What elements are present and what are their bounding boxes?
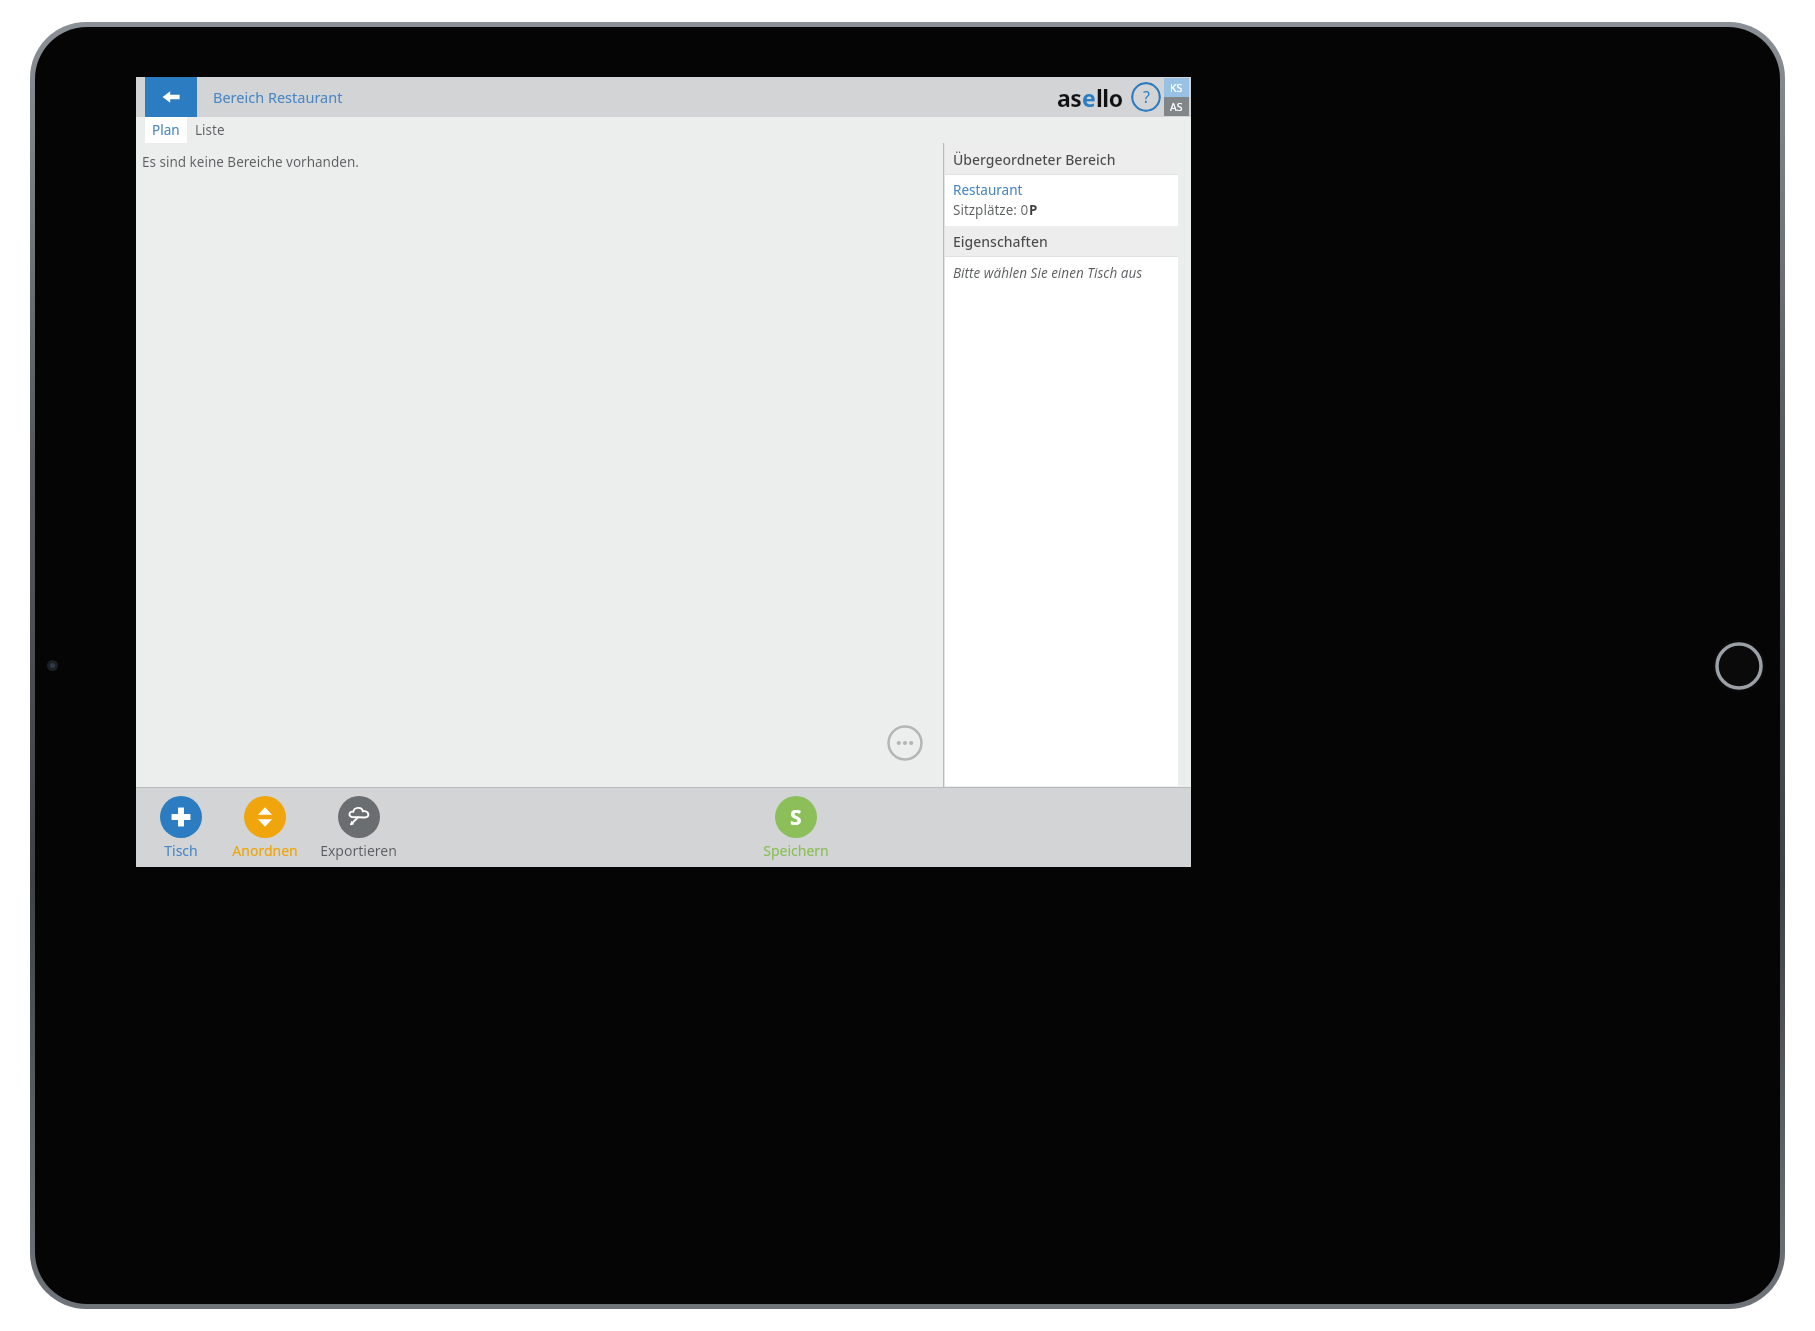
button[interactable]: Liste xyxy=(187,117,233,143)
staticText: P xyxy=(1029,201,1038,219)
staticText: Liste xyxy=(195,121,225,139)
staticText: Bitte wählen Sie einen Tisch aus xyxy=(953,264,1143,282)
button[interactable]: Hilfe xyxy=(1131,82,1161,112)
staticText: Übergeordneter Bereich xyxy=(953,150,1116,169)
staticText: AS xyxy=(1170,100,1183,114)
staticText: Exportieren xyxy=(320,841,397,860)
button[interactable]: AS xyxy=(1164,97,1189,116)
staticText: S xyxy=(790,803,802,832)
staticText: Speichern xyxy=(763,841,829,860)
staticText: Plan xyxy=(152,121,180,139)
staticText: Bereich Restaurant xyxy=(213,87,343,107)
button[interactable]: Restaurant xyxy=(945,175,1178,226)
button[interactable]: Anordnen xyxy=(228,796,302,860)
staticText: e xyxy=(1082,82,1096,113)
staticText: Es sind keine Bereiche vorhanden. xyxy=(142,153,359,171)
button[interactable]: KS xyxy=(1164,78,1189,97)
staticText: Sitzplätze: 0 xyxy=(953,201,1029,219)
staticText: as xyxy=(1057,82,1082,113)
staticText: Tisch xyxy=(164,841,198,860)
staticText: Restaurant xyxy=(953,181,1023,199)
button[interactable]: Weitere Optionen xyxy=(887,725,923,761)
button[interactable]: Zurück xyxy=(145,77,197,117)
button[interactable]: S xyxy=(759,796,833,860)
staticText: llo xyxy=(1096,82,1123,113)
button[interactable]: Exportieren xyxy=(316,796,401,860)
button[interactable]: Tisch xyxy=(156,796,206,860)
staticText: Eigenschaften xyxy=(953,232,1048,251)
staticText: Anordnen xyxy=(232,841,298,860)
button[interactable]: Plan xyxy=(145,117,187,143)
staticText: ? xyxy=(1143,86,1150,108)
staticText: KS xyxy=(1170,81,1183,95)
